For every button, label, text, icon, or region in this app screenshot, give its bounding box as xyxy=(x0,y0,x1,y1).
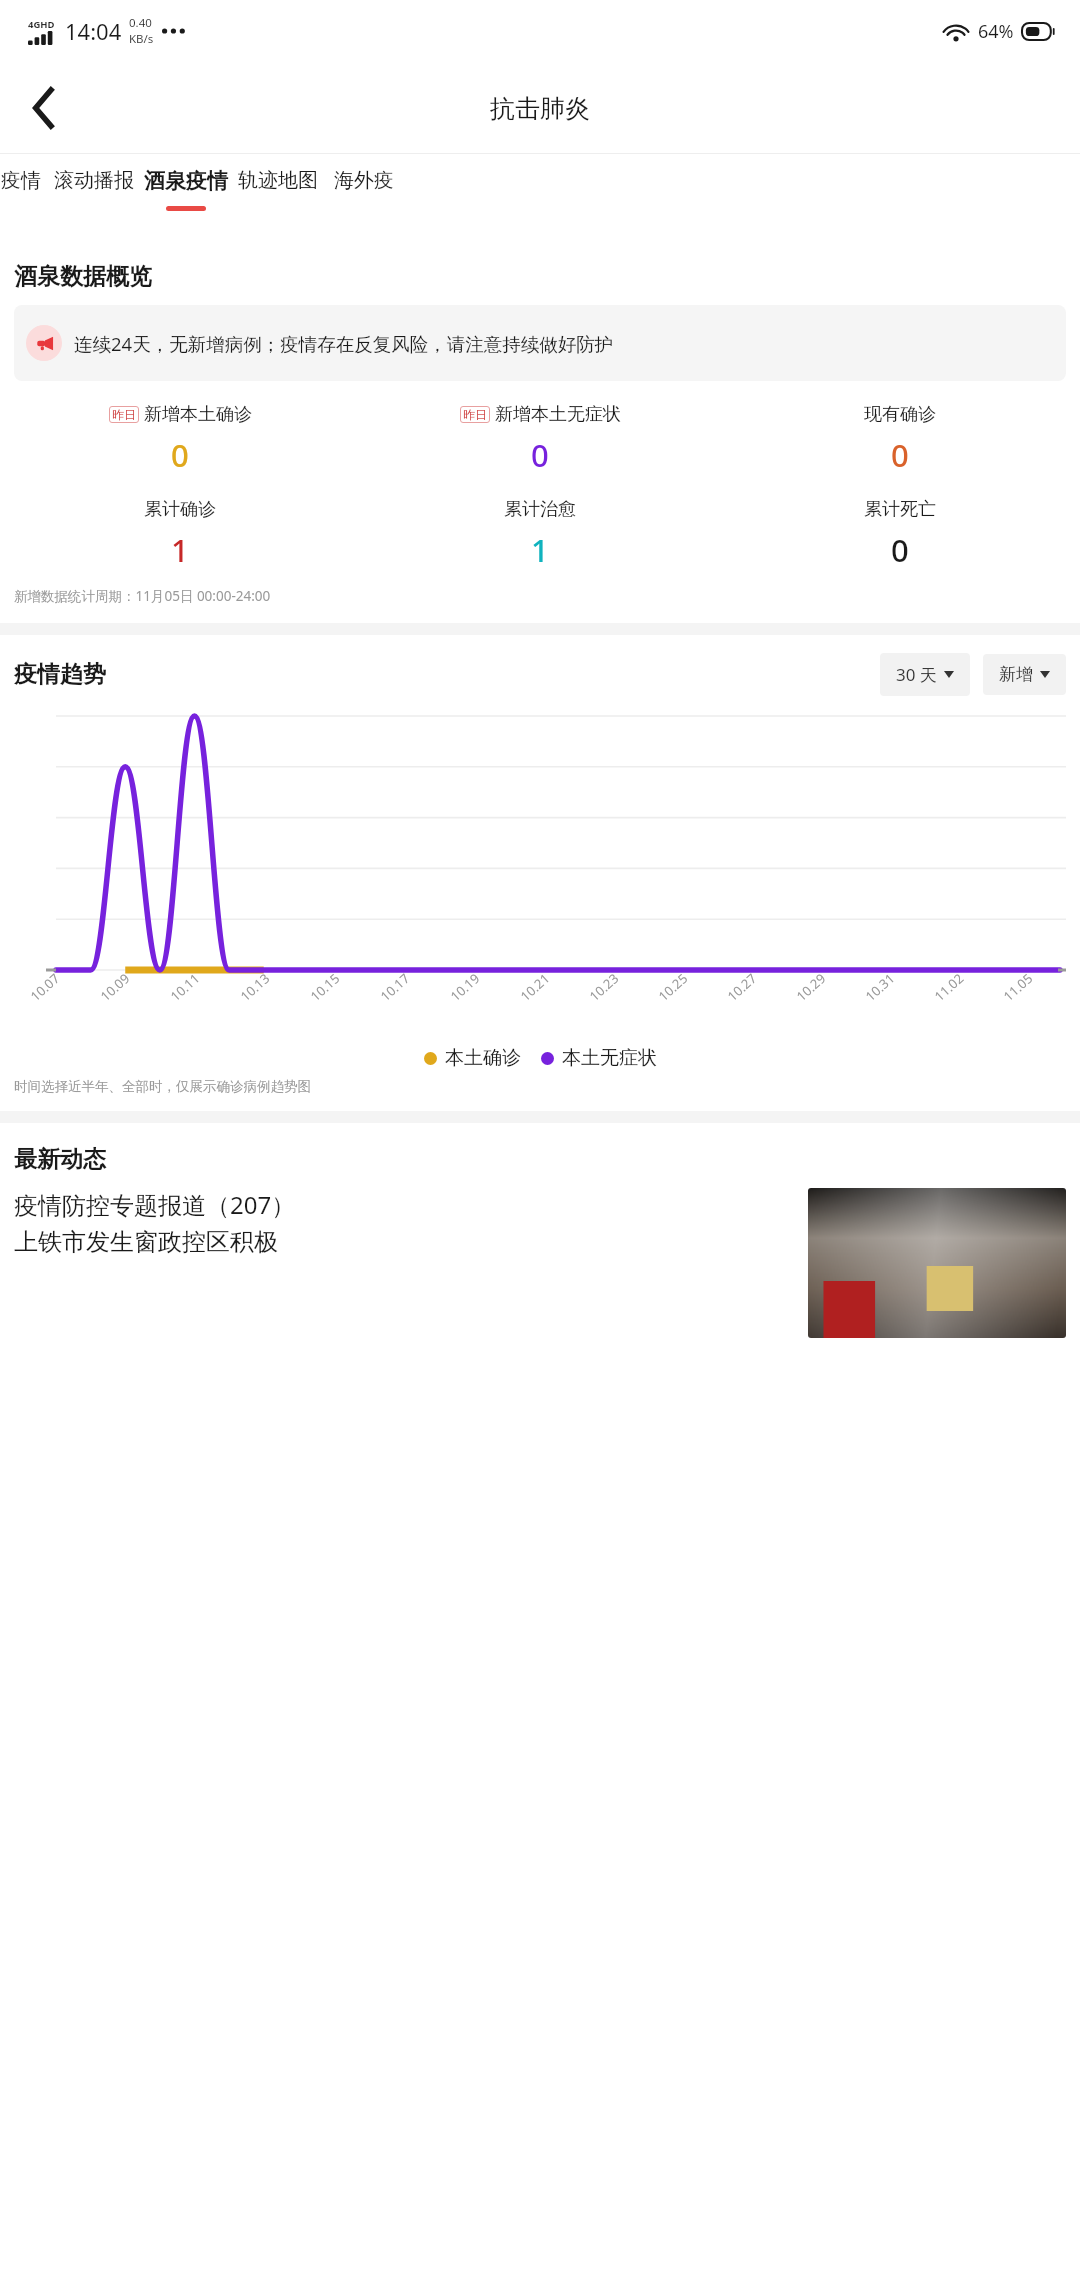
staticText: 新增本土无症状 xyxy=(495,403,621,426)
staticText: 酒泉疫情 xyxy=(144,168,228,194)
staticText: 抗击肺炎 xyxy=(490,93,590,124)
staticText: 10.07 xyxy=(26,969,64,1005)
button[interactable]: 连续24天，无新增病例；疫情存在反复风险，请注意持续做好防护 xyxy=(14,305,1066,381)
button[interactable]: 30 天 xyxy=(880,653,970,696)
staticText: 时间选择近半年、全部时，仅展示确诊病例趋势图 xyxy=(14,1078,311,1095)
staticText: 14:04 xyxy=(65,16,122,46)
staticText: 疫情防控专题报道（207） xyxy=(14,1188,296,1221)
staticText: 30 天 xyxy=(896,663,937,686)
staticText: 累计死亡 xyxy=(864,498,936,521)
staticText: 0 xyxy=(171,434,189,476)
staticText: 酒泉数据概览 xyxy=(14,262,152,291)
staticText: 10.13 xyxy=(236,969,274,1005)
staticText: 10.09 xyxy=(96,969,134,1005)
staticText: 新增本土确诊 xyxy=(144,403,252,426)
button[interactable]: 昨日 xyxy=(0,403,360,476)
staticText: 0 xyxy=(891,434,909,476)
staticText: 新增 xyxy=(999,664,1033,685)
button[interactable]: Back xyxy=(16,80,72,136)
staticText: 本土无症状 xyxy=(562,1046,657,1070)
button[interactable]: 国疫情 xyxy=(0,154,48,236)
staticText: 10.15 xyxy=(306,969,344,1005)
staticText: 疫情趋势 xyxy=(14,660,106,689)
staticText: 4GHD xyxy=(28,18,55,31)
staticText: 新增数据统计周期：11月05日 00:00-24:00 xyxy=(14,587,271,605)
staticText: 10.27 xyxy=(723,969,761,1005)
button[interactable]: 现有确诊 xyxy=(720,403,1080,476)
button[interactable]: 轨迹地图 xyxy=(232,154,324,236)
staticText: 64% xyxy=(978,19,1014,44)
staticText: 0.40 xyxy=(129,15,152,31)
staticText: 国疫情 xyxy=(0,168,41,193)
button[interactable]: 新增 xyxy=(983,654,1066,695)
staticText: 10.31 xyxy=(861,969,899,1005)
staticText: 连续24天，无新增病例；疫情存在反复风险，请注意持续做好防护 xyxy=(74,331,614,356)
button[interactable]: 疫情防控专题报道（207） xyxy=(0,1188,1080,1338)
button[interactable]: 累计死亡 xyxy=(720,498,1080,571)
staticText: 10.19 xyxy=(446,969,484,1005)
button[interactable]: 累计治愈 xyxy=(360,498,720,571)
staticText: 10.29 xyxy=(792,969,830,1005)
staticText: 1 xyxy=(171,529,189,571)
staticText: 11.02 xyxy=(930,969,968,1005)
button[interactable]: 海外疫 xyxy=(324,154,404,236)
staticText: 0 xyxy=(531,434,549,476)
staticText: 最新动态 xyxy=(14,1145,106,1174)
staticText: 昨日 xyxy=(112,407,136,422)
staticText: 10.25 xyxy=(654,969,692,1005)
button[interactable]: 酒泉疫情 xyxy=(140,154,232,236)
staticText: 累计确诊 xyxy=(144,498,216,521)
staticText: 10.17 xyxy=(376,969,414,1005)
staticText: 10.11 xyxy=(166,969,204,1005)
staticText: 现有确诊 xyxy=(864,403,936,426)
staticText: 累计治愈 xyxy=(504,498,576,521)
button[interactable]: 昨日 xyxy=(360,403,720,476)
staticText: 1 xyxy=(531,529,549,571)
staticText: 本土确诊 xyxy=(445,1046,521,1070)
button[interactable]: 滚动播报 xyxy=(48,154,140,236)
staticText: KB/s xyxy=(129,31,154,47)
staticText: 10.23 xyxy=(585,969,623,1005)
staticText: 上铁市发生窗政控区积极 xyxy=(14,1227,278,1257)
button[interactable]: 累计确诊 xyxy=(0,498,360,571)
staticText: 昨日 xyxy=(463,407,487,422)
staticText: 10.21 xyxy=(516,969,554,1005)
staticText: 滚动播报 xyxy=(54,168,134,193)
staticText: 0 xyxy=(891,529,909,571)
staticText: 轨迹地图 xyxy=(238,168,318,193)
staticText: 11.05 xyxy=(999,969,1037,1005)
staticText: 海外疫 xyxy=(334,168,394,193)
